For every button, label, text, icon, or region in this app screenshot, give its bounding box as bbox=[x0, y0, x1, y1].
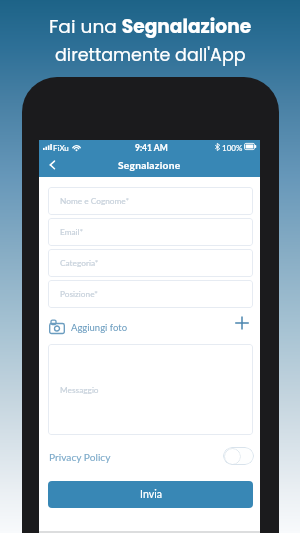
button[interactable]: Privacy Policy bbox=[49, 451, 111, 463]
staticText: Messaggio bbox=[60, 385, 99, 395]
staticText: 9:41 AM bbox=[135, 143, 168, 153]
button[interactable]: Back bbox=[43, 155, 62, 174]
staticText: Fai una Segnalazione bbox=[49, 13, 252, 39]
button[interactable]: Email* bbox=[48, 218, 253, 246]
button[interactable]: Posizione* bbox=[48, 280, 253, 308]
button[interactable]: Aggiungi foto bbox=[49, 317, 128, 337]
staticText: 100% bbox=[222, 143, 243, 153]
button[interactable]: Add photo bbox=[232, 313, 252, 333]
button[interactable]: Accept privacy policy bbox=[223, 447, 254, 465]
button[interactable]: Categoria* bbox=[48, 249, 253, 277]
staticText: Nome e Cognome* bbox=[60, 196, 130, 206]
button[interactable]: Messaggio bbox=[48, 344, 253, 435]
staticText: Invia bbox=[140, 488, 162, 501]
staticText: direttamente dall'App bbox=[55, 43, 246, 68]
staticText: FiXu bbox=[53, 143, 69, 153]
staticText: Posizione* bbox=[60, 289, 98, 299]
button[interactable]: Invia bbox=[48, 481, 253, 508]
button[interactable]: Nome e Cognome* bbox=[48, 187, 253, 215]
staticText: Email* bbox=[60, 227, 84, 237]
staticText: Categoria* bbox=[60, 258, 99, 268]
staticText: Segnalazione bbox=[118, 159, 181, 171]
staticText: Aggiungi foto bbox=[71, 322, 128, 333]
